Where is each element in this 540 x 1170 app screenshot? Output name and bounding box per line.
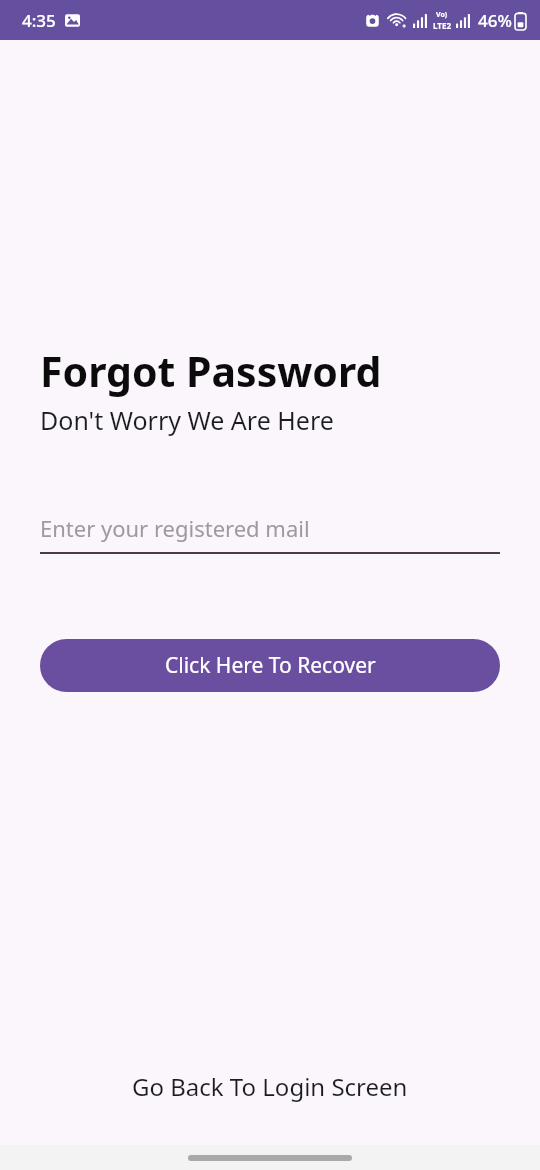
staticText: Enter your registered mail (40, 513, 310, 543)
button[interactable]: Enter your registered mail (40, 513, 500, 554)
button[interactable]: Click Here To Recover (40, 639, 500, 692)
staticText: Vo) (436, 10, 448, 20)
staticText: 46% (478, 9, 512, 32)
staticText: Don't Worry We Are Here (40, 403, 334, 437)
staticText: 4:35 (22, 9, 56, 32)
button[interactable]: Home (188, 1155, 352, 1161)
staticText: Go Back To Login Screen (132, 1070, 408, 1103)
staticText: Click Here To Recover (165, 651, 376, 680)
button[interactable]: Go Back To Login Screen (0, 1062, 540, 1111)
staticText: LTE2 (433, 20, 451, 31)
staticText: Forgot Password (40, 343, 382, 399)
